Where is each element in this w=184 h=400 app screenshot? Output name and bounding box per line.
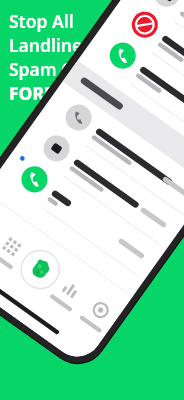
staticText: FOREVER [9, 81, 87, 105]
other: App screenshot preview [0, 0, 184, 400]
staticText: Spam Calls [9, 57, 102, 81]
staticText: Landline [9, 33, 83, 57]
staticText: Stop All [9, 9, 74, 33]
button[interactable]: Stop All [8, 9, 103, 105]
